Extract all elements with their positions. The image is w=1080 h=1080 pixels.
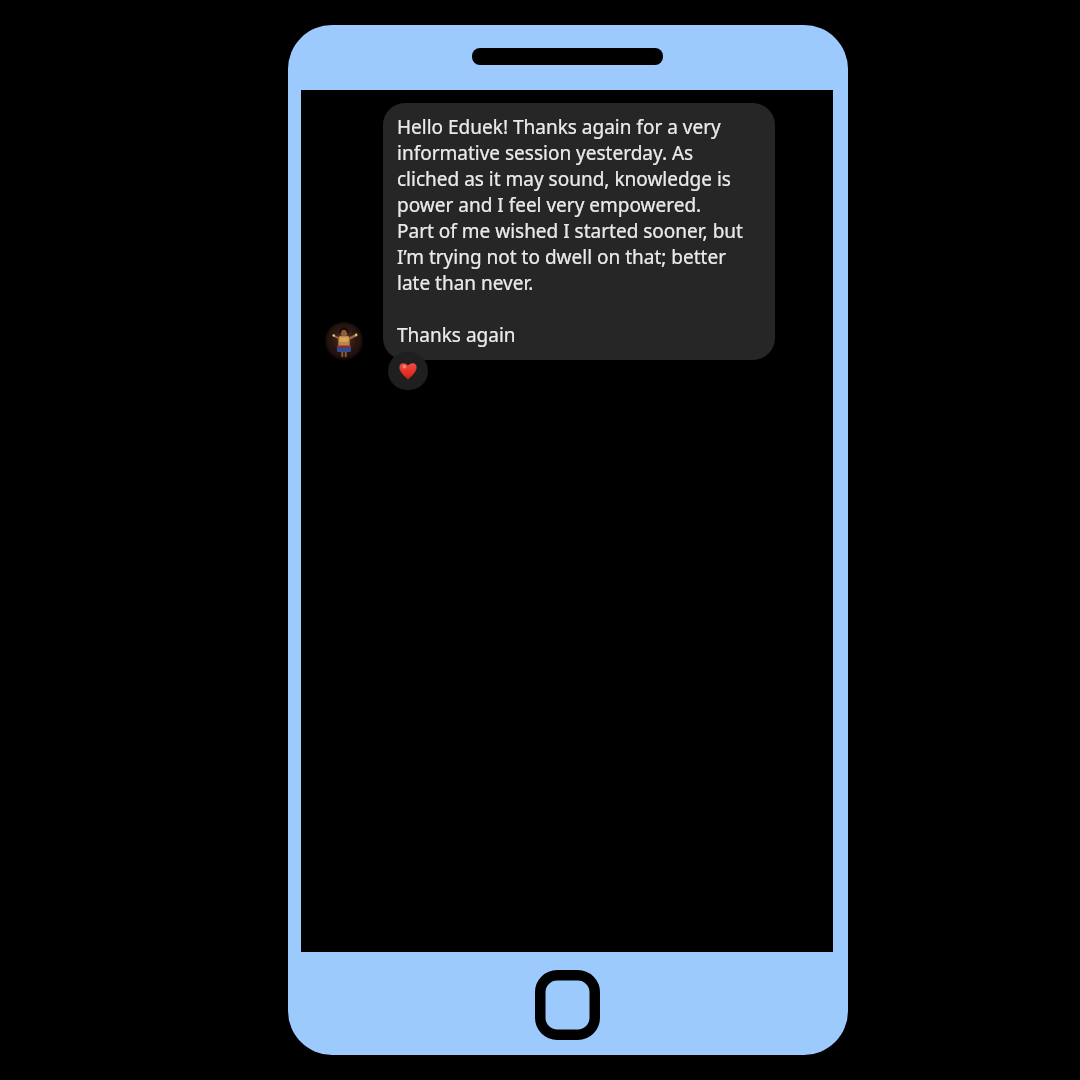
button[interactable]: Home	[535, 970, 600, 1040]
button[interactable]: Hello Eduek! Thanks again for a very inf…	[383, 103, 775, 360]
button[interactable]: Sender profile photo	[325, 322, 363, 360]
staticText: Hello Eduek! Thanks again for a very inf…	[397, 114, 743, 348]
button[interactable]: Heart reaction	[388, 352, 428, 390]
